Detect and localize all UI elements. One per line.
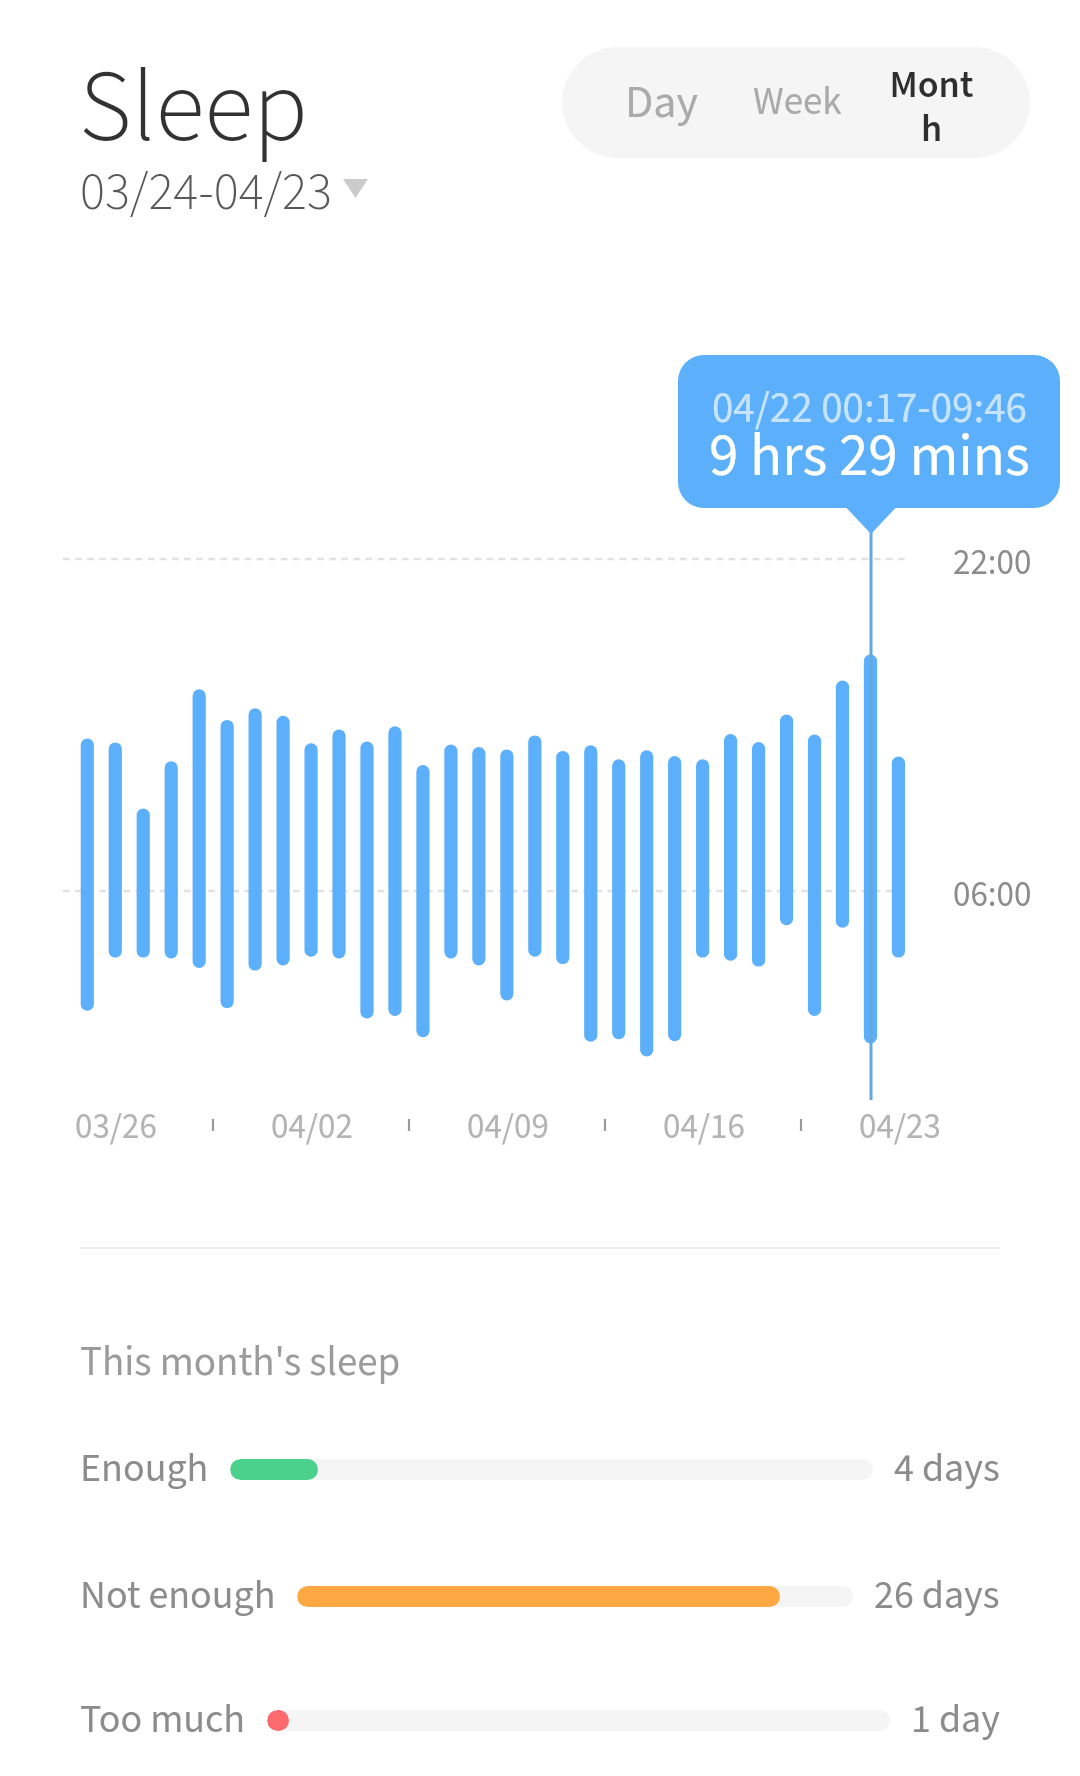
staticText: 9 hrs 29 mins xyxy=(709,419,1030,496)
staticText: 06:00 xyxy=(953,873,1032,919)
staticText: 04/16 xyxy=(663,1105,745,1151)
button[interactable]: Week xyxy=(732,47,863,158)
staticText: Day xyxy=(625,73,698,133)
button[interactable]: 03/24-04/23 xyxy=(80,160,368,228)
button[interactable]: Enough xyxy=(0,1443,1080,1495)
staticText: 04/22 00:17-09:46 xyxy=(712,381,1027,437)
staticText: Mont h xyxy=(889,61,974,154)
staticText: 4 days xyxy=(894,1443,1000,1495)
staticText: This month's sleep xyxy=(80,1336,401,1389)
staticText: 04/02 xyxy=(271,1105,353,1151)
staticText: 26 days xyxy=(874,1570,1000,1622)
button[interactable]: Day xyxy=(596,47,727,158)
button[interactable]: Not enough xyxy=(0,1570,1080,1622)
staticText: Sleep xyxy=(79,44,309,175)
staticText: 03/24-04/23 xyxy=(80,160,332,228)
staticText: 04/09 xyxy=(467,1105,549,1151)
staticText: 22:00 xyxy=(953,541,1032,587)
button[interactable]: 04/22 00:17-09:46 xyxy=(678,355,1060,508)
staticText: Not enough xyxy=(80,1570,276,1622)
staticText: 04/23 xyxy=(859,1105,941,1151)
button[interactable]: Mont h xyxy=(873,47,990,158)
staticText: 1 day xyxy=(911,1694,1000,1746)
button[interactable]: Too much xyxy=(0,1694,1080,1746)
staticText: Week xyxy=(753,77,842,128)
staticText: Too much xyxy=(80,1694,246,1746)
staticText: Enough xyxy=(80,1443,209,1495)
staticText: 03/26 xyxy=(75,1105,157,1151)
